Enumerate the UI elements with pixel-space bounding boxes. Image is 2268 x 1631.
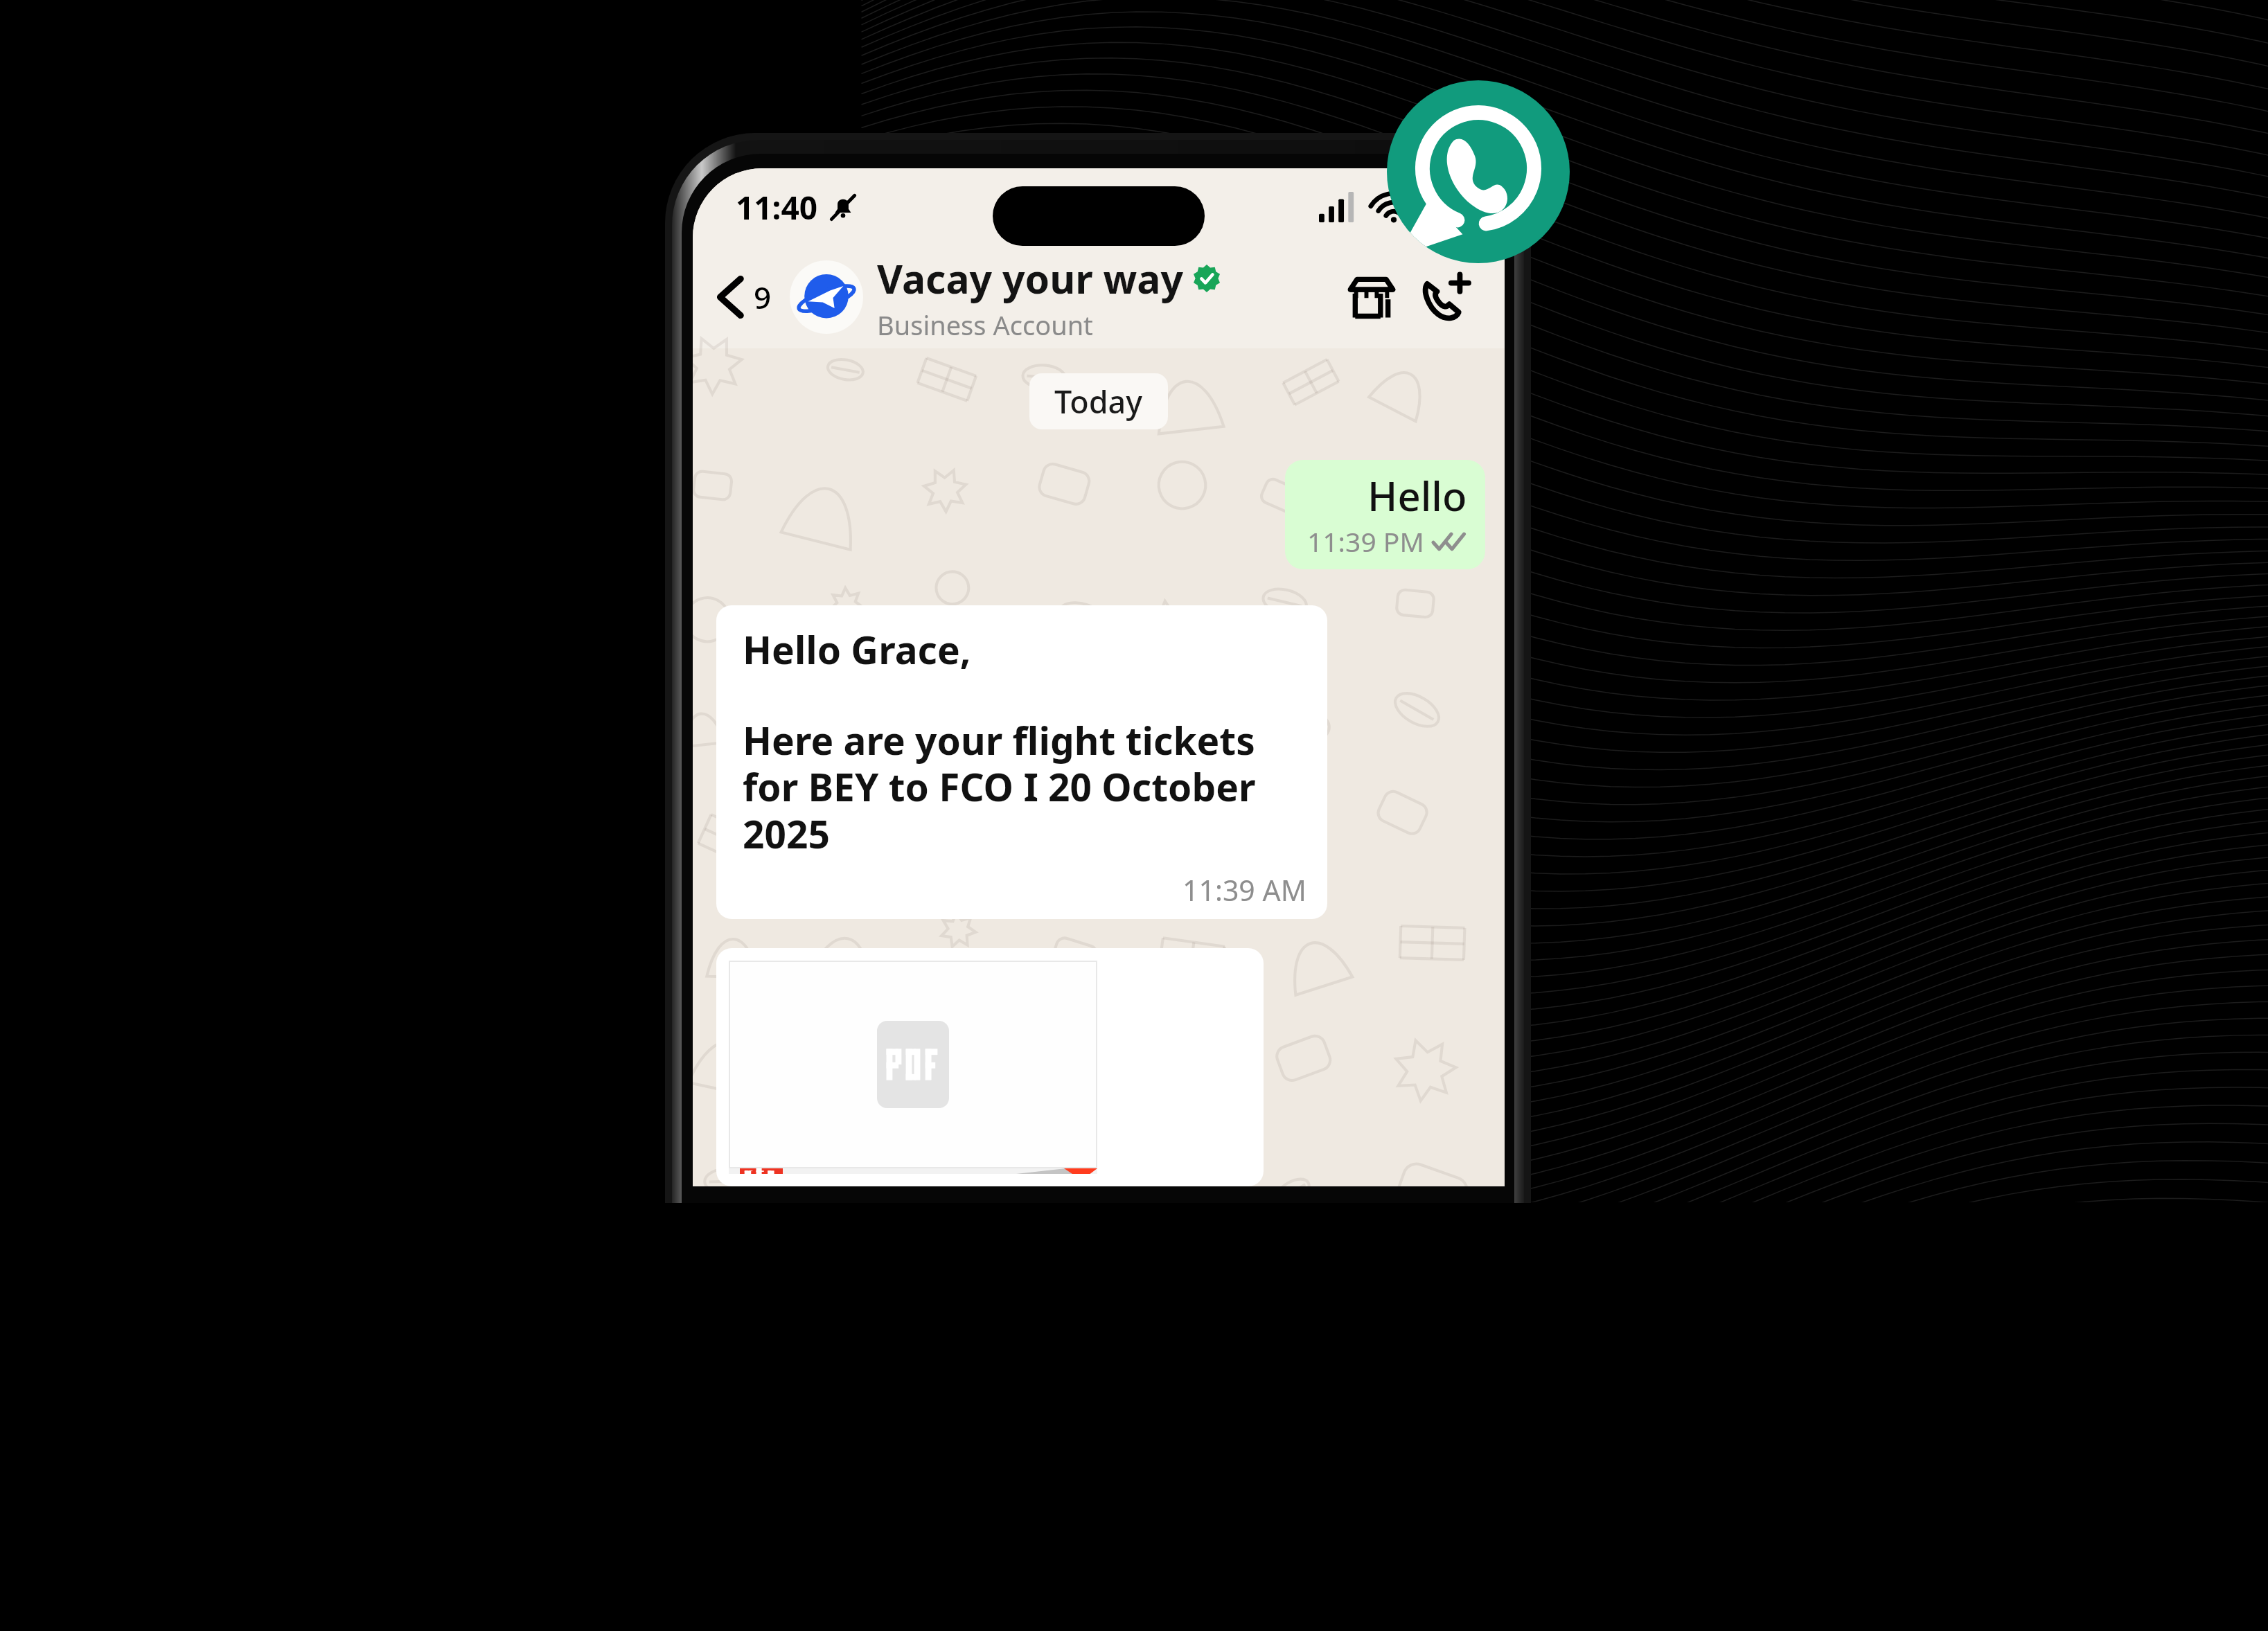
staticText: Hello [1367,468,1467,523]
staticText: 11:40 [736,186,818,229]
button[interactable]: WhatsApp [1387,80,1570,263]
button[interactable]: Vacay your way [877,251,1340,343]
staticText: Vacay your way [877,251,1183,305]
button[interactable]: Today [1029,373,1168,429]
staticText: Here are your flight tickets for BEY to … [743,714,1306,859]
staticText: 11:39 AM [1182,871,1306,909]
staticText: Your Electronic Ti... [794,1168,1063,1174]
button[interactable]: Call [1413,265,1477,329]
button[interactable]: Hello Grace, [716,605,1327,919]
button[interactable]: Back, 9 unread [711,276,779,318]
staticText: Business Account [877,307,1093,343]
staticText: Today [1054,380,1143,422]
staticText: Hello Grace, [743,623,971,675]
button[interactable]: Profile photo [790,260,863,334]
staticText: 9 [754,276,772,318]
button[interactable]: Business catalog [1340,265,1403,329]
button[interactable]: Hello [1285,460,1485,569]
staticText: 11:39 PM [1307,523,1424,560]
button[interactable]: PDF, Your Electronic Ticket [716,948,1264,1186]
